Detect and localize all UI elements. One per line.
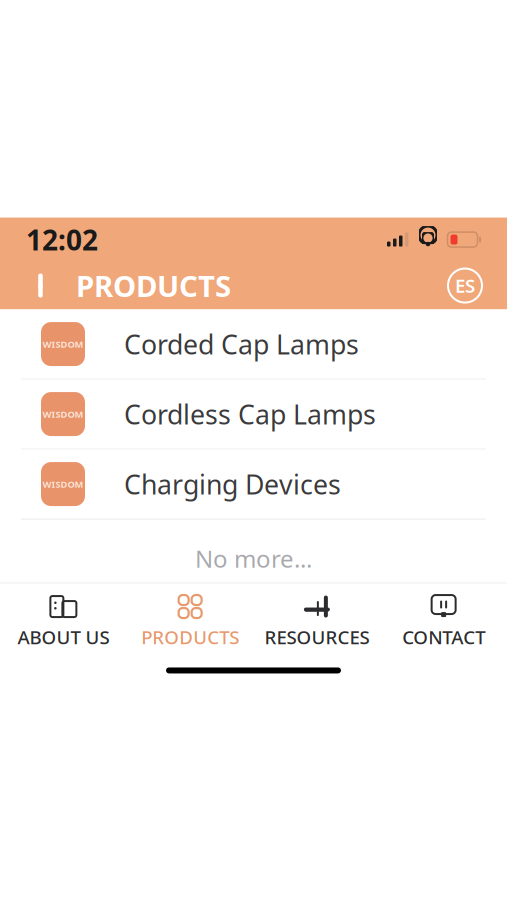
staticText: WISDOM bbox=[42, 408, 83, 420]
staticText: WISDOM bbox=[42, 338, 83, 350]
button[interactable]: Account ES bbox=[443, 262, 487, 310]
staticText: PRODUCTS bbox=[76, 266, 231, 305]
button[interactable]: ABOUT US bbox=[0, 593, 127, 649]
staticText: PRODUCTS bbox=[141, 624, 239, 649]
staticText: RESOURCES bbox=[264, 624, 369, 649]
staticText: Cordless Cap Lamps bbox=[124, 396, 376, 432]
button[interactable]: Back bbox=[20, 262, 64, 310]
button[interactable]: CONTACT bbox=[380, 593, 507, 649]
staticText: Charging Devices bbox=[124, 466, 341, 502]
button[interactable]: WISDOM bbox=[0, 310, 507, 380]
staticText: WISDOM bbox=[42, 478, 83, 490]
staticText: 12:02 bbox=[26, 221, 98, 258]
staticText: ES bbox=[455, 273, 475, 298]
button[interactable]: PRODUCTS bbox=[127, 593, 254, 649]
button[interactable]: WISDOM bbox=[0, 450, 507, 520]
staticText: No more... bbox=[195, 543, 312, 574]
staticText: CONTACT bbox=[402, 624, 485, 649]
button[interactable]: WISDOM bbox=[0, 380, 507, 450]
staticText: Corded Cap Lamps bbox=[124, 326, 359, 362]
button[interactable]: RESOURCES bbox=[253, 593, 380, 649]
staticText: ABOUT US bbox=[17, 624, 109, 649]
